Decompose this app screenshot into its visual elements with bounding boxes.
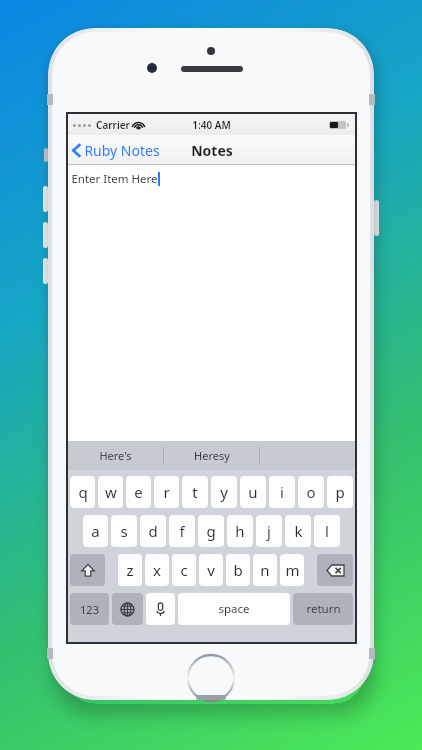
button[interactable]: Dictate [146, 593, 175, 625]
staticText: x [153, 560, 161, 580]
button[interactable]: s [111, 515, 137, 547]
staticText: Heresy [194, 448, 230, 463]
staticText: j [267, 521, 271, 541]
staticText: b [233, 560, 243, 580]
button[interactable]: g [198, 515, 224, 547]
button[interactable]: i [269, 476, 295, 508]
staticText: f [179, 521, 185, 541]
button[interactable]: Change keyboard [112, 593, 143, 625]
button[interactable]: z [118, 554, 142, 586]
staticText: i [280, 482, 284, 502]
button[interactable]: u [240, 476, 266, 508]
staticText: h [235, 521, 245, 541]
button[interactable]: Ruby Notes [68, 137, 166, 164]
button[interactable]: x [145, 554, 169, 586]
button[interactable]: n [253, 554, 277, 586]
button[interactable]: w [98, 476, 123, 508]
button[interactable]: h [227, 515, 253, 547]
button[interactable]: l [314, 515, 340, 547]
button[interactable]: q [70, 476, 95, 508]
staticText: r [163, 482, 170, 502]
staticText: 1:40 AM [192, 118, 231, 132]
button[interactable]: r [154, 476, 179, 508]
staticText: a [91, 521, 100, 541]
button[interactable]: f [169, 515, 195, 547]
button[interactable]: return [293, 593, 353, 625]
button[interactable]: Backspace [317, 554, 353, 586]
button[interactable]: j [256, 515, 282, 547]
staticText: space [218, 601, 250, 617]
button[interactable]: 123 [70, 593, 109, 625]
button[interactable]: Here's [68, 441, 163, 470]
staticText: z [126, 560, 134, 580]
staticText: Enter Item Here [71, 171, 158, 187]
button[interactable]: d [140, 515, 166, 547]
button[interactable]: k [285, 515, 311, 547]
button[interactable]: a [83, 515, 108, 547]
staticText: e [134, 482, 143, 502]
staticText: g [206, 521, 216, 541]
button[interactable]: p [327, 476, 353, 508]
staticText: s [120, 521, 128, 541]
staticText: y [220, 482, 228, 502]
staticText: k [294, 521, 303, 541]
staticText: c [180, 560, 188, 580]
button[interactable]: Heresy [164, 441, 259, 470]
staticText: q [78, 482, 88, 502]
staticText: p [335, 482, 345, 502]
staticText: Carrier [96, 118, 130, 132]
staticText: 123 [80, 602, 99, 617]
button[interactable]: space [178, 593, 290, 625]
button[interactable]: v [199, 554, 223, 586]
button[interactable]: e [126, 476, 151, 508]
staticText: o [306, 482, 316, 502]
staticText: d [148, 521, 158, 541]
staticText: Here's [99, 448, 132, 463]
button[interactable]: Shift [70, 554, 105, 586]
button[interactable]: c [172, 554, 196, 586]
button[interactable]: m [280, 554, 304, 586]
staticText: Notes [191, 141, 233, 160]
staticText: u [248, 482, 258, 502]
staticText: t [192, 482, 198, 502]
button[interactable]: y [211, 476, 237, 508]
staticText: Ruby Notes [84, 141, 160, 160]
staticText: w [105, 482, 117, 502]
button[interactable]: Enter Item Here [68, 165, 355, 441]
button[interactable]: t [182, 476, 208, 508]
button[interactable]: b [226, 554, 250, 586]
button[interactable]: o [298, 476, 324, 508]
staticText: n [260, 560, 270, 580]
staticText: m [285, 560, 300, 580]
staticText: l [325, 521, 329, 541]
staticText: v [207, 560, 215, 580]
staticText: return [306, 601, 341, 617]
